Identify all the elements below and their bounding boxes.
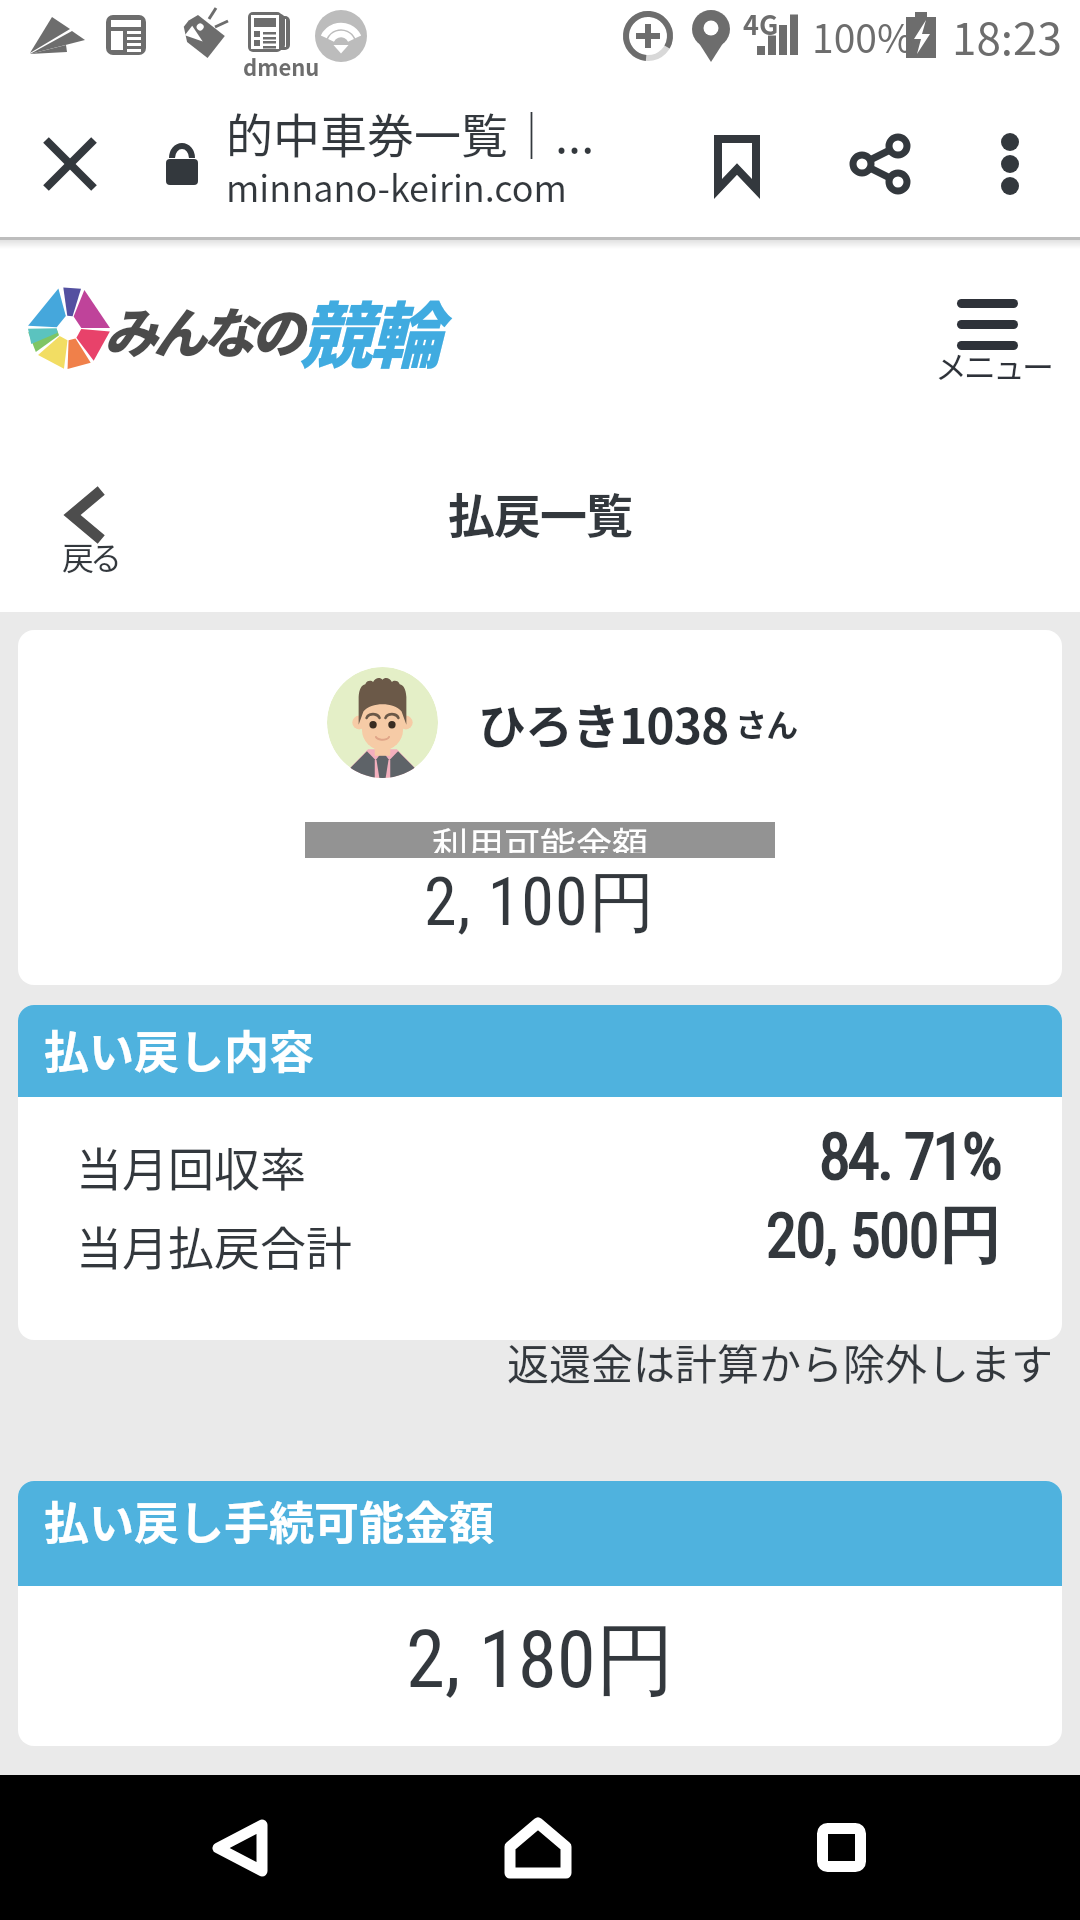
button[interactable]: Home	[468, 1775, 608, 1920]
button[interactable]: Back	[170, 1775, 310, 1920]
staticText: 当月払戻合計	[76, 1212, 352, 1279]
staticText: minnano-keirin.com	[226, 160, 567, 212]
staticText: 払い戻し内容	[44, 1017, 315, 1082]
staticText: 2, 100円	[424, 861, 656, 944]
staticText: 払戻一覧	[448, 478, 632, 546]
staticText: 返還金は計算から除外します	[0, 1331, 1053, 1392]
button[interactable]: Share	[830, 90, 930, 237]
staticText: 戻る	[62, 533, 119, 579]
staticText: 100%	[812, 8, 913, 64]
staticText: ひろき1038	[478, 688, 729, 758]
staticText: dmenu	[243, 50, 320, 82]
staticText: 的中車券一覧｜...	[226, 98, 595, 166]
staticText: 利用可能金額	[432, 817, 649, 853]
button[interactable]: Back	[26, 465, 166, 585]
button[interactable]: Recent apps	[771, 1775, 911, 1920]
staticText: 競輪	[300, 278, 441, 382]
staticText: 払い戻し手続可能金額	[44, 1488, 495, 1553]
staticText: 84. 71%	[819, 1120, 1000, 1195]
button[interactable]: Bookmark	[687, 90, 787, 237]
button[interactable]: Menu	[930, 263, 1070, 383]
staticText: 20, 500円	[766, 1197, 1000, 1275]
staticText: みんなの	[104, 290, 300, 368]
button[interactable]: More options	[960, 90, 1060, 237]
staticText: 4G	[743, 4, 779, 43]
button[interactable]: Close	[20, 90, 120, 237]
staticText: メニュー	[935, 342, 1052, 388]
staticText: 当月回収率	[76, 1133, 306, 1200]
staticText: 2, 180円	[406, 1611, 675, 1711]
staticText: さん	[729, 700, 798, 746]
staticText: 18:23	[952, 4, 1062, 68]
